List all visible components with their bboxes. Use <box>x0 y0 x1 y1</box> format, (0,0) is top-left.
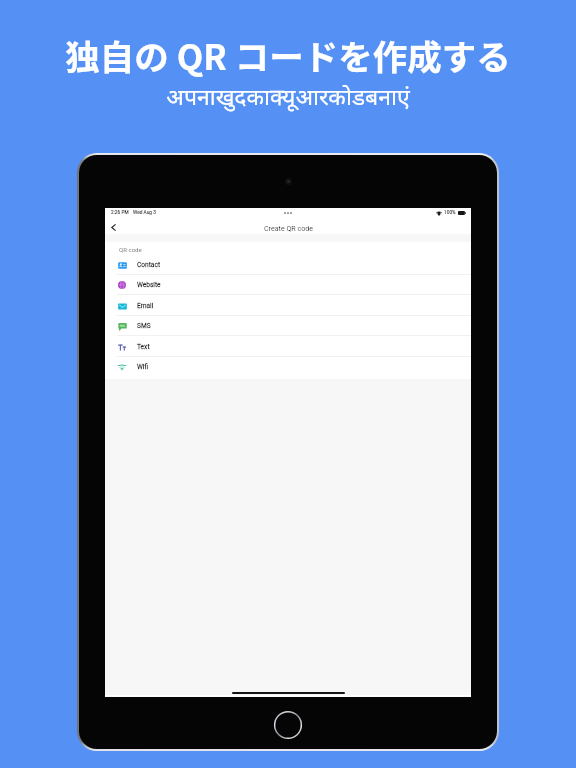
button[interactable]: Text <box>105 336 471 357</box>
button[interactable]: Contact <box>105 254 471 275</box>
button[interactable]: Wifi <box>105 356 471 377</box>
staticText: Contact <box>137 261 161 269</box>
button[interactable]: SMS <box>105 315 471 336</box>
button[interactable]: Back <box>105 219 122 236</box>
staticText: Wifi <box>137 363 149 371</box>
staticText: अपनाखुदकाक्यूआरकोडबनाएं <box>166 80 410 111</box>
button[interactable]: Home <box>273 710 303 740</box>
button[interactable]: Website <box>105 274 471 295</box>
staticText: Website <box>137 281 161 289</box>
staticText: 独自の QR コードを作成する <box>65 30 511 80</box>
staticText: Create QR code <box>264 224 313 232</box>
staticText: Wed Aug 3 <box>133 210 156 216</box>
button[interactable]: Email <box>105 295 471 316</box>
staticText: Text <box>137 343 150 351</box>
staticText: 100% <box>444 210 456 216</box>
staticText: Email <box>137 302 154 310</box>
staticText: QR code <box>119 246 142 253</box>
staticText: 2:26 PM <box>111 210 129 216</box>
staticText: SMS <box>137 322 151 330</box>
